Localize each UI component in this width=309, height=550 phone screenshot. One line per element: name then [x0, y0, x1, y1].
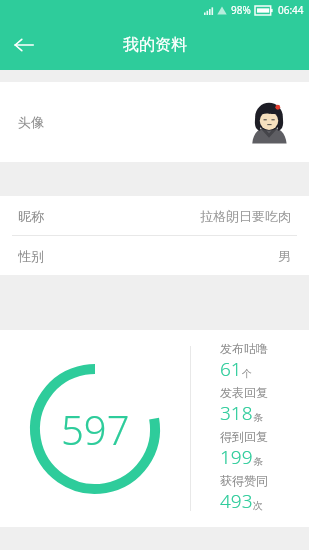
- staticText: 头像: [18, 114, 44, 130]
- staticText: 个: [242, 367, 252, 380]
- staticText: 条: [253, 411, 263, 424]
- button[interactable]: 性别: [0, 236, 309, 275]
- button[interactable]: 头像: [0, 82, 309, 162]
- staticText: 昵称: [18, 208, 44, 224]
- staticText: 98%: [231, 3, 251, 17]
- staticText: 拉格朗日要吃肉: [200, 208, 291, 224]
- staticText: 597: [61, 402, 130, 456]
- staticText: 61: [220, 356, 242, 382]
- staticText: 06:44: [278, 3, 304, 17]
- button[interactable]: Back: [0, 21, 48, 69]
- staticText: 我的资料: [123, 35, 187, 55]
- staticText: 性别: [18, 248, 44, 264]
- staticText: 发表回复: [220, 385, 268, 400]
- button[interactable]: 昵称: [0, 196, 309, 235]
- staticText: 条: [253, 455, 263, 468]
- staticText: 199: [220, 444, 253, 470]
- staticText: 得到回复: [220, 429, 268, 444]
- staticText: 获得赞同: [220, 473, 268, 488]
- staticText: 次: [253, 499, 263, 512]
- staticText: 发布咕噜: [220, 341, 268, 356]
- staticText: 318: [220, 400, 253, 426]
- staticText: 493: [220, 488, 253, 514]
- staticText: 男: [278, 248, 291, 264]
